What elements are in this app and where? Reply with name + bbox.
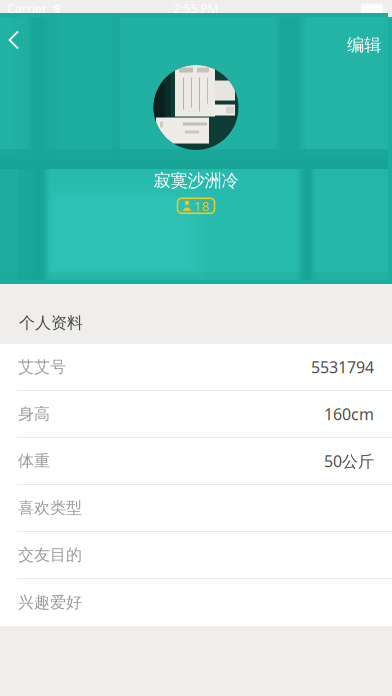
staticText: 交友目的 [18, 545, 82, 565]
button[interactable]: 身高 [0, 391, 392, 438]
button[interactable]: 兴趣爱好 [0, 579, 392, 626]
button[interactable]: 编辑 [337, 23, 391, 67]
staticText: 身高 [18, 404, 50, 424]
button[interactable]: Back [0, 23, 40, 67]
staticText: 编辑 [347, 34, 381, 56]
staticText: 喜欢类型 [18, 498, 82, 518]
staticText: 160cm [324, 403, 374, 425]
staticText: 个人资料 [19, 313, 83, 333]
staticText: 50公斤 [324, 450, 374, 472]
button[interactable]: 喜欢类型 [0, 485, 392, 532]
button[interactable]: 艾艾号 [0, 344, 392, 391]
staticText: 2:55 PM [173, 0, 218, 16]
staticText: 18 [193, 197, 209, 215]
staticText: Carrier [7, 0, 47, 16]
staticText: 艾艾号 [18, 357, 66, 377]
button[interactable]: 体重 [0, 438, 392, 485]
staticText: 寂寞沙洲冷 [153, 170, 238, 191]
staticText: 5531794 [311, 356, 374, 378]
staticText: 体重 [18, 451, 50, 471]
staticText: 兴趣爱好 [18, 593, 82, 612]
button[interactable]: 交友目的 [0, 532, 392, 579]
